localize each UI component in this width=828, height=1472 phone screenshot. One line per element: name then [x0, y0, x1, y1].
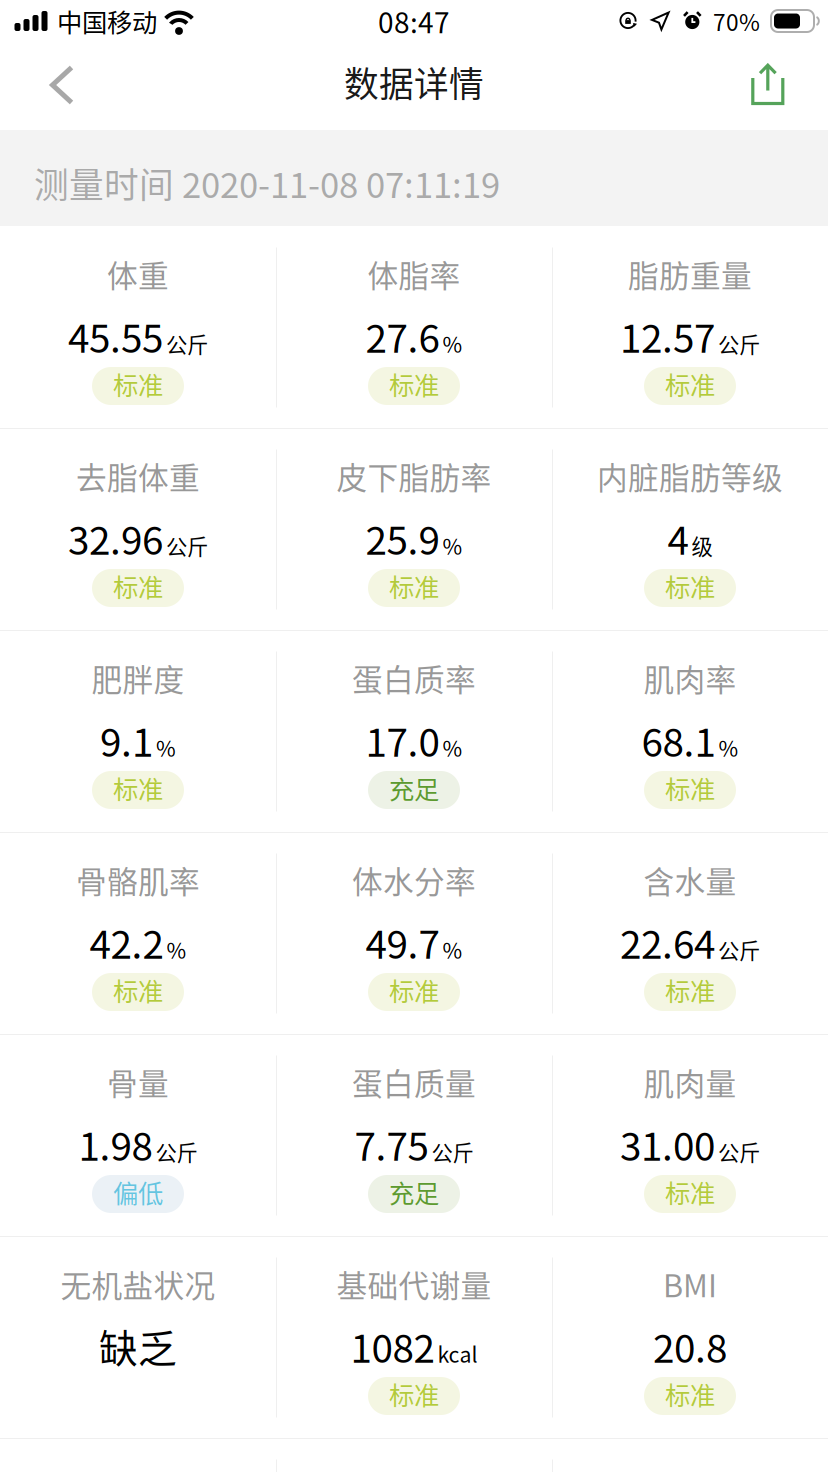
staticText: 22.64 — [620, 914, 715, 970]
staticText: 肌肉率 — [643, 656, 736, 700]
staticText: % — [156, 732, 176, 763]
staticText: 公斤 — [431, 1136, 473, 1167]
staticText: 31.00 — [620, 1116, 715, 1172]
staticText: 公斤 — [166, 328, 208, 359]
staticText: 32.96 — [68, 510, 163, 566]
staticText: 充足 — [389, 770, 439, 806]
staticText: 4 — [667, 510, 688, 566]
staticText: 内脏脂肪等级 — [597, 454, 783, 498]
staticText: 基础代谢量 — [336, 1262, 491, 1306]
staticText: 肌肉量 — [643, 1060, 736, 1104]
staticText: 70% — [713, 5, 760, 37]
staticText: 级 — [691, 530, 712, 561]
staticText: 标准 — [665, 972, 715, 1008]
staticText: 测量时间 2020-11-08 07:11:19 — [34, 158, 500, 208]
staticText: 标准 — [665, 1376, 715, 1412]
staticText: 皮下脂肪率 — [336, 454, 491, 498]
staticText: 标准 — [665, 366, 715, 402]
staticText: 标准 — [389, 366, 439, 402]
staticText: 9.1 — [100, 712, 153, 768]
staticText: 45.55 — [68, 308, 163, 364]
staticText: % — [718, 732, 738, 763]
staticText: 去脂体重 — [76, 454, 200, 498]
staticText: % — [442, 934, 462, 965]
staticText: 标准 — [113, 770, 163, 806]
staticText: 公斤 — [718, 934, 760, 965]
staticText: 体脂率 — [367, 252, 460, 296]
staticText: 充足 — [389, 1174, 439, 1210]
staticText: 27.6 — [365, 308, 439, 364]
button[interactable]: 分享 — [716, 42, 828, 122]
staticText: 20.8 — [653, 1318, 727, 1374]
staticText: % — [442, 732, 462, 763]
staticText: % — [166, 934, 186, 965]
button[interactable]: 返回 — [0, 42, 112, 122]
staticText: 骨量 — [107, 1060, 169, 1104]
staticText: 无机盐状况 — [60, 1262, 215, 1306]
staticText: 蛋白质量 — [352, 1060, 476, 1104]
staticText: BMI — [663, 1262, 717, 1306]
staticText: 公斤 — [718, 328, 760, 359]
staticText: 蛋白质率 — [352, 656, 476, 700]
staticText: % — [442, 530, 462, 561]
staticText: 中国移动 — [57, 3, 157, 39]
staticText: 含水量 — [643, 858, 736, 902]
staticText: 体重 — [107, 252, 169, 296]
staticText: 25.9 — [365, 510, 439, 566]
staticText: 1.98 — [78, 1116, 152, 1172]
staticText: 12.57 — [620, 308, 715, 364]
staticText: 7.75 — [354, 1116, 428, 1172]
staticText: 标准 — [665, 568, 715, 604]
staticText: 脂肪重量 — [628, 252, 752, 296]
staticText: 数据详情 — [344, 57, 484, 107]
staticText: 体水分率 — [352, 858, 476, 902]
staticText: 公斤 — [166, 530, 208, 561]
staticText: 标准 — [665, 770, 715, 806]
staticText: % — [442, 328, 462, 359]
staticText: 08:47 — [378, 1, 450, 41]
staticText: 68.1 — [641, 712, 715, 768]
staticText: 标准 — [389, 972, 439, 1008]
staticText: 标准 — [113, 366, 163, 402]
staticText: 肥胖度 — [91, 656, 184, 700]
staticText: 标准 — [665, 1174, 715, 1210]
staticText: 公斤 — [718, 1136, 760, 1167]
staticText: 缺乏 — [99, 1318, 177, 1374]
staticText: kcal — [437, 1338, 477, 1369]
staticText: 标准 — [113, 568, 163, 604]
staticText: 标准 — [389, 1376, 439, 1412]
staticText: 17.0 — [365, 712, 439, 768]
staticText: 骨骼肌率 — [76, 858, 200, 902]
staticText: 公斤 — [155, 1136, 197, 1167]
staticText: 42.2 — [89, 914, 163, 970]
staticText: 标准 — [113, 972, 163, 1008]
staticText: 偏低 — [113, 1174, 163, 1210]
staticText: 标准 — [389, 568, 439, 604]
staticText: 1082 — [350, 1318, 434, 1374]
staticText: 49.7 — [365, 914, 439, 970]
